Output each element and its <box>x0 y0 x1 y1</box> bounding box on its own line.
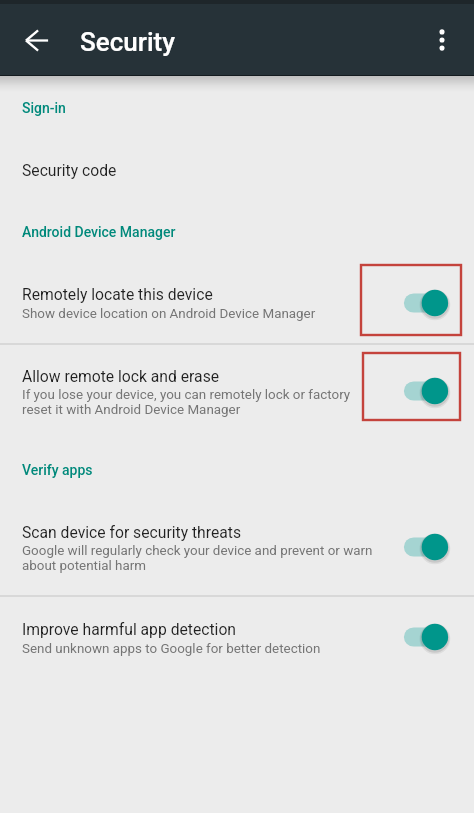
staticText: If you lose your device, you can remotel… <box>22 387 351 417</box>
staticText: Allow remote lock and erase <box>22 367 220 385</box>
staticText: Send unknown apps to Google for better d… <box>22 641 321 657</box>
button[interactable]: Scan device for security threats <box>0 503 474 594</box>
button[interactable]: Allow remote lock and erase <box>0 345 474 429</box>
staticText: Improve harmful app detection <box>22 620 237 638</box>
staticText: Scan device for security threats <box>22 523 241 541</box>
button[interactable]: Sign-in <box>0 88 474 126</box>
button[interactable]: Allow remote lock and erase <box>400 375 456 407</box>
button[interactable]: More options <box>424 22 460 58</box>
staticText: Sign-in <box>22 100 66 116</box>
button[interactable]: Navigate up <box>20 28 56 64</box>
button[interactable]: Improve harmful app detection <box>400 621 456 653</box>
staticText: Android Device Manager <box>22 224 176 240</box>
staticText: Security code <box>22 161 117 179</box>
button[interactable]: Android Device Manager <box>0 212 474 250</box>
button[interactable]: Remotely locate this device <box>400 287 456 319</box>
staticText: Show device location on Android Device M… <box>22 306 316 322</box>
staticText: Remotely locate this device <box>22 285 213 303</box>
button[interactable]: Security code <box>0 143 474 185</box>
staticText: Security <box>80 27 175 57</box>
button[interactable]: Verify apps <box>0 450 474 488</box>
button[interactable]: Remotely locate this device <box>0 265 474 343</box>
button[interactable]: Improve harmful app detection <box>0 600 474 673</box>
staticText: Google will regularly check your device … <box>22 543 373 573</box>
staticText: Verify apps <box>22 462 93 478</box>
button[interactable]: Scan device for security threats <box>400 531 456 563</box>
